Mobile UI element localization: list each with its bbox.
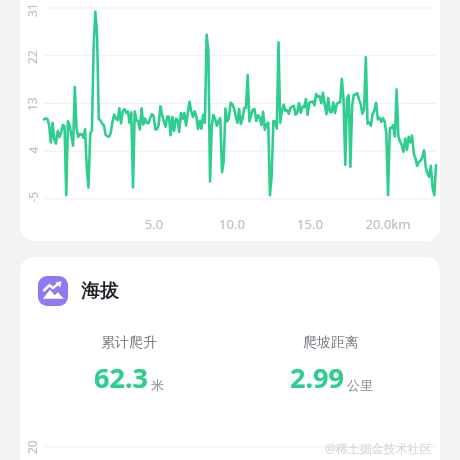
- staticText: 15.0: [271, 215, 349, 233]
- button[interactable]: 31: [20, 0, 440, 241]
- staticText: 爬坡距离: [303, 334, 359, 352]
- staticText: 4: [24, 146, 40, 153]
- staticText: 20.0km: [349, 215, 427, 233]
- staticText: 62.3: [94, 359, 148, 396]
- staticText: 米: [151, 377, 164, 393]
- other: 海拔: [38, 276, 68, 306]
- staticText: 公里: [347, 377, 373, 393]
- staticText: 5.0: [115, 215, 193, 233]
- staticText: @稀土掘金技术社区: [325, 440, 432, 456]
- staticText: -5: [24, 191, 40, 202]
- button[interactable]: 海拔: [20, 257, 440, 460]
- button[interactable]: 海拔: [38, 276, 440, 306]
- staticText: 20: [24, 440, 40, 454]
- staticText: 海拔: [81, 279, 119, 303]
- staticText: 13: [24, 97, 40, 111]
- staticText: 31: [24, 3, 40, 17]
- staticText: 累计爬升: [101, 334, 157, 352]
- staticText: 10.0: [193, 215, 271, 233]
- staticText: 2.99: [290, 359, 344, 396]
- staticText: 22: [24, 50, 40, 64]
